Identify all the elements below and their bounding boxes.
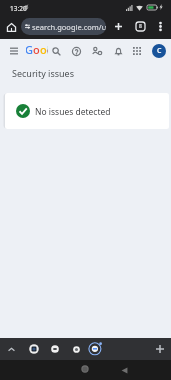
button[interactable]: GIF — [47, 341, 63, 357]
staticText: o — [33, 42, 40, 57]
button[interactable]: Main menu — [6, 43, 22, 59]
staticText: Security issues — [12, 67, 75, 79]
button[interactable]: Google Account — [150, 42, 167, 59]
button[interactable]: Sticker — [68, 341, 84, 357]
button[interactable]: More options — [152, 18, 168, 34]
button[interactable]: Google apps — [129, 43, 145, 59]
staticText: C — [157, 46, 162, 56]
staticText: No issues detected — [35, 106, 111, 118]
staticText: 13:20 — [10, 4, 27, 13]
button[interactable]: New tab — [110, 18, 126, 34]
button[interactable]: Search or type URL — [21, 18, 106, 35]
button[interactable]: Google Lens — [85, 338, 105, 358]
button[interactable]: Tabs — [132, 18, 148, 34]
button[interactable]: Home — [77, 361, 93, 377]
staticText: o — [40, 42, 47, 57]
button[interactable]: Back — [116, 362, 132, 378]
button[interactable]: Help — [68, 43, 84, 59]
button[interactable]: Notifications — [110, 43, 126, 59]
button[interactable]: Search — [48, 43, 64, 59]
button[interactable]: Home — [3, 19, 19, 35]
button[interactable]: No issues detected — [5, 93, 169, 129]
staticText: 8 — [139, 23, 142, 30]
button[interactable]: Add — [152, 341, 168, 357]
button[interactable]: Expand toolbar — [3, 341, 19, 357]
button[interactable]: Invite — [89, 43, 105, 59]
staticText: search.google.com/u/ — [32, 22, 106, 32]
staticText: G — [26, 42, 33, 57]
button[interactable]: Google — [26, 42, 48, 57]
button[interactable]: Emoji — [26, 341, 42, 357]
